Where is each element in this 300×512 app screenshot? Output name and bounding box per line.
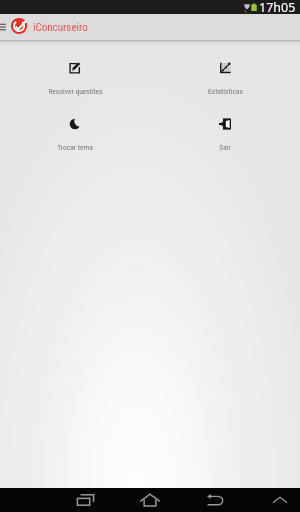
button[interactable]: Recent apps — [72, 488, 99, 512]
staticText: Sair — [219, 143, 231, 152]
button[interactable]: Sair — [150, 118, 300, 152]
button[interactable]: Estatísticas — [150, 62, 300, 96]
button[interactable]: Resolver questões — [0, 62, 150, 96]
button[interactable]: Hide navigation bar — [266, 488, 294, 512]
staticText: 17h05 — [259, 0, 296, 13]
button[interactable]: Menu — [0, 14, 10, 40]
staticText: iConcurseiro — [33, 21, 88, 34]
staticText: Estatísticas — [208, 87, 243, 96]
button[interactable]: Trocar tema — [0, 118, 150, 152]
button[interactable]: Home — [136, 488, 164, 512]
staticText: Resolver questões — [48, 87, 103, 96]
staticText: Trocar tema — [57, 143, 93, 152]
button[interactable]: Back — [201, 488, 229, 512]
